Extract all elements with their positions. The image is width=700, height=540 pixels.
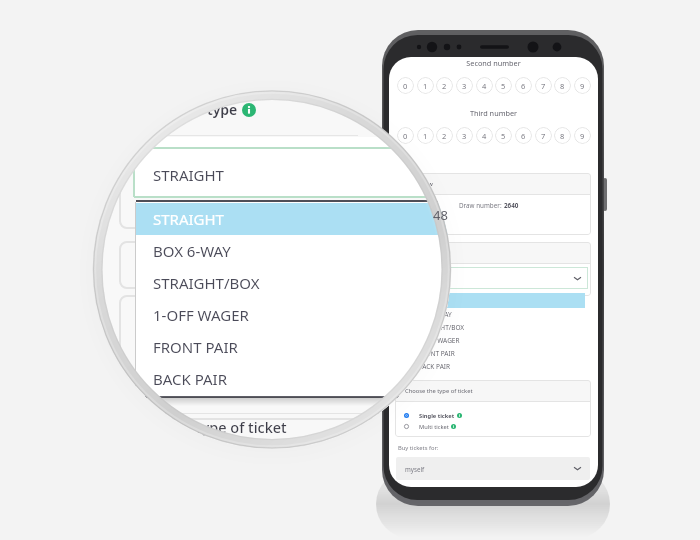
button[interactable]: 5 — [495, 77, 512, 94]
staticText: 0 — [403, 131, 408, 141]
button[interactable]: 3 — [456, 127, 473, 144]
button[interactable]: BACK PAIR — [136, 363, 451, 395]
button[interactable]: 1 — [417, 127, 434, 144]
button[interactable]: STRAIGHT — [136, 203, 451, 235]
staticText: 7 — [541, 131, 546, 141]
button[interactable]: 0 — [397, 127, 414, 144]
staticText: 3 — [462, 131, 467, 141]
button[interactable]: 5 — [495, 127, 512, 144]
staticText: STRAIGHT — [153, 209, 224, 229]
button[interactable]: 1-OFF WAGER — [136, 299, 451, 331]
staticText: FRONT PAIR — [153, 337, 238, 357]
button[interactable]: 9 — [574, 77, 591, 94]
button[interactable] — [134, 137, 451, 198]
button[interactable]: Multi ticket — [404, 421, 456, 432]
button[interactable]: FRONT PAIR — [396, 347, 585, 360]
button[interactable]: 3 — [456, 77, 473, 94]
staticText: BACK PAIR — [153, 369, 228, 389]
staticText: 8 — [560, 131, 565, 141]
staticText: type of ticket — [196, 417, 287, 437]
button[interactable]: 0 — [397, 77, 414, 94]
staticText: 1 — [423, 131, 428, 141]
staticText: 7 — [541, 81, 546, 91]
staticText: 6 — [521, 81, 526, 91]
staticText: Next draw — [405, 180, 433, 188]
staticText: Third number — [389, 108, 598, 118]
button[interactable]: 1 — [417, 77, 434, 94]
staticText: 2640 — [504, 201, 519, 210]
staticText: Single ticket — [419, 412, 455, 420]
staticText: 2 — [442, 81, 447, 91]
staticText: FRONT PAIR — [418, 349, 455, 358]
button[interactable]: FRONT PAIR — [136, 331, 451, 363]
staticText: 8 — [560, 81, 565, 91]
staticText: Buy tickets for: — [398, 444, 439, 452]
staticText: Multi ticket — [419, 423, 449, 431]
staticText: 4 — [482, 81, 487, 91]
staticText: 4 — [482, 131, 487, 141]
staticText: 1-OFF WAGER — [153, 305, 249, 325]
staticText: 6 — [521, 131, 526, 141]
button[interactable]: BOX 6-WAY — [396, 308, 585, 321]
button[interactable]: 6 — [515, 127, 532, 144]
button[interactable]: Single ticket — [404, 410, 462, 421]
button[interactable]: 9 — [574, 127, 591, 144]
button[interactable]: STRAIGHT/BOX — [396, 321, 585, 334]
button[interactable]: 8 — [554, 77, 571, 94]
staticText: BACK PAIR — [418, 362, 451, 371]
staticText: type — [207, 100, 238, 119]
staticText: BOX 6-WAY — [418, 310, 452, 319]
staticText: 1 — [423, 81, 428, 91]
button[interactable] — [396, 267, 588, 289]
staticText: myself — [405, 465, 425, 473]
button[interactable]: 2 — [436, 127, 453, 144]
button[interactable]: 8 — [554, 127, 571, 144]
staticText: Second number — [389, 58, 598, 68]
staticText: 1-OFF WAGER — [418, 336, 460, 345]
button[interactable]: STRAIGHT/BOX — [136, 267, 451, 299]
staticText: 9 — [580, 131, 585, 141]
button[interactable]: 2 — [436, 77, 453, 94]
staticText: 2 — [442, 131, 447, 141]
staticText: 48 — [433, 206, 448, 224]
button[interactable]: 7 — [535, 77, 552, 94]
button[interactable]: 4 — [476, 127, 493, 144]
staticText: 5 — [501, 81, 506, 91]
button[interactable]: BOX 6-WAY — [136, 235, 451, 267]
button[interactable] — [136, 203, 451, 235]
staticText: STRAIGHT/BOX — [418, 323, 465, 332]
staticText: STRAIGHT — [153, 165, 224, 185]
staticText: Choose the type of ticket — [405, 387, 473, 395]
staticText: Draw number: — [459, 201, 504, 210]
staticText: 5 — [501, 131, 506, 141]
staticText: 3 — [462, 81, 467, 91]
button[interactable]: myself — [396, 457, 590, 480]
staticText: 9 — [580, 81, 585, 91]
button[interactable]: 6 — [515, 77, 532, 94]
staticText: 0 — [403, 81, 408, 91]
staticText: BOX 6-WAY — [153, 241, 231, 261]
button[interactable]: 1-OFF WAGER — [396, 334, 585, 347]
button[interactable]: BACK PAIR — [396, 360, 585, 373]
button[interactable]: 7 — [535, 127, 552, 144]
button[interactable]: 4 — [476, 77, 493, 94]
button[interactable] — [396, 293, 585, 308]
staticText: STRAIGHT/BOX — [153, 273, 260, 293]
